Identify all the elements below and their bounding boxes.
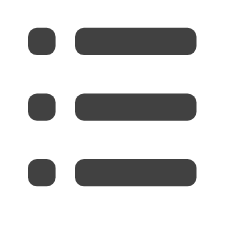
button[interactable]: List item 3 — [28, 159, 197, 186]
button[interactable]: List item 2 — [28, 94, 197, 121]
button[interactable]: List item 1 — [28, 28, 197, 55]
